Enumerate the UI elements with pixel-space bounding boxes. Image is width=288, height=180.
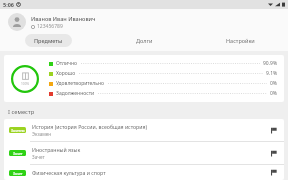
staticText: Зачет	[13, 151, 23, 156]
staticText: Предметы	[34, 37, 63, 44]
button[interactable]: Подробнее	[269, 126, 278, 135]
staticText: 0%	[270, 80, 278, 87]
staticText: 0%	[270, 90, 278, 97]
staticText: Настройки	[226, 37, 255, 44]
staticText: Удовлетворительно	[56, 80, 105, 87]
staticText: Физическая культура и спорт	[32, 169, 106, 176]
button[interactable]: Подробнее	[269, 169, 278, 176]
staticText: 9.1%	[266, 70, 278, 77]
button[interactable]: Долги	[96, 34, 192, 47]
staticText: Отлично	[56, 60, 78, 67]
staticText: 123456789	[37, 23, 63, 30]
staticText: Иванов Иван Иванович	[31, 15, 96, 22]
button[interactable]: 100%	[4, 55, 284, 102]
staticText: Иностранный язык	[32, 146, 81, 153]
staticText: Экзамен	[32, 131, 52, 137]
button[interactable]: Предметы	[25, 34, 72, 47]
staticText: Задолженности	[56, 90, 95, 97]
button[interactable]: Настройки	[192, 34, 288, 47]
button[interactable]: Подробнее	[269, 149, 278, 158]
staticText: Долги	[136, 37, 153, 44]
staticText: Зачет	[13, 171, 23, 176]
staticText: Зачет	[32, 154, 45, 160]
staticText: 90.9%	[263, 60, 278, 67]
staticText: Хорошо	[56, 70, 76, 77]
staticText: I семестр	[8, 108, 35, 116]
button[interactable]: Зачет	[4, 142, 284, 164]
staticText: История (история России, всеобщая истори…	[32, 123, 148, 130]
button[interactable]: Зачтено	[4, 119, 284, 141]
staticText: 100%	[21, 82, 30, 86]
button[interactable]: Зачет	[4, 165, 284, 180]
staticText: Зачтено	[11, 128, 25, 133]
staticText: 5:06	[3, 1, 14, 8]
